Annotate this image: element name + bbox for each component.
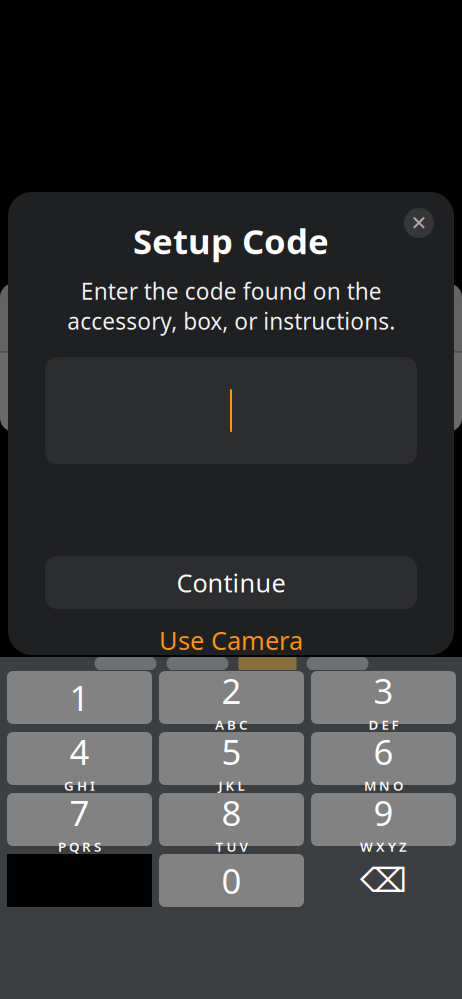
button[interactable]: 3	[311, 671, 456, 724]
button[interactable]: Continue	[45, 556, 417, 609]
staticText: 9	[373, 790, 393, 836]
staticText: 0	[221, 857, 241, 903]
staticText: D E F	[368, 716, 398, 733]
staticText: 6	[373, 729, 393, 775]
staticText: 2	[221, 668, 241, 714]
button[interactable]: 7	[7, 793, 152, 846]
staticText: J K L	[218, 777, 244, 794]
button[interactable]: 9	[311, 793, 456, 846]
staticText: 1	[69, 674, 89, 720]
staticText: Enter the code found on the accessory, b…	[67, 276, 395, 336]
button[interactable]: 4	[7, 732, 152, 785]
button[interactable]: Use Camera	[45, 626, 417, 654]
staticText: 7	[69, 790, 89, 836]
button[interactable]: 8	[159, 793, 304, 846]
staticText: 8	[221, 790, 241, 836]
staticText: Continue	[176, 566, 285, 599]
staticText: 4	[69, 729, 89, 775]
staticText: A B C	[215, 716, 248, 733]
staticText: Locate the QR code	[52, 374, 409, 424]
staticText: 5	[221, 729, 241, 775]
button[interactable]: Delete	[311, 854, 456, 907]
staticText: Use Camera	[159, 623, 303, 657]
staticText: ⌫	[360, 862, 407, 899]
staticText: W X Y Z	[360, 838, 407, 855]
button[interactable]: ‹	[0, 295, 109, 339]
button[interactable]: Close	[404, 208, 434, 238]
staticText: P Q R S	[58, 838, 101, 855]
staticText: 3	[373, 668, 393, 714]
button[interactable]: 5	[159, 732, 304, 785]
staticText: Home	[194, 300, 268, 334]
staticText: Back	[35, 300, 91, 334]
staticText: T U V	[215, 838, 247, 855]
button[interactable]: 6	[311, 732, 456, 785]
button[interactable]: 0	[159, 854, 304, 907]
staticText: Setup Code	[133, 218, 329, 264]
button[interactable]: 2	[159, 671, 304, 724]
staticText: G H I	[64, 777, 95, 794]
button[interactable]: 1	[7, 671, 152, 724]
staticText: ✕	[410, 212, 427, 234]
staticText: M N O	[364, 777, 403, 794]
